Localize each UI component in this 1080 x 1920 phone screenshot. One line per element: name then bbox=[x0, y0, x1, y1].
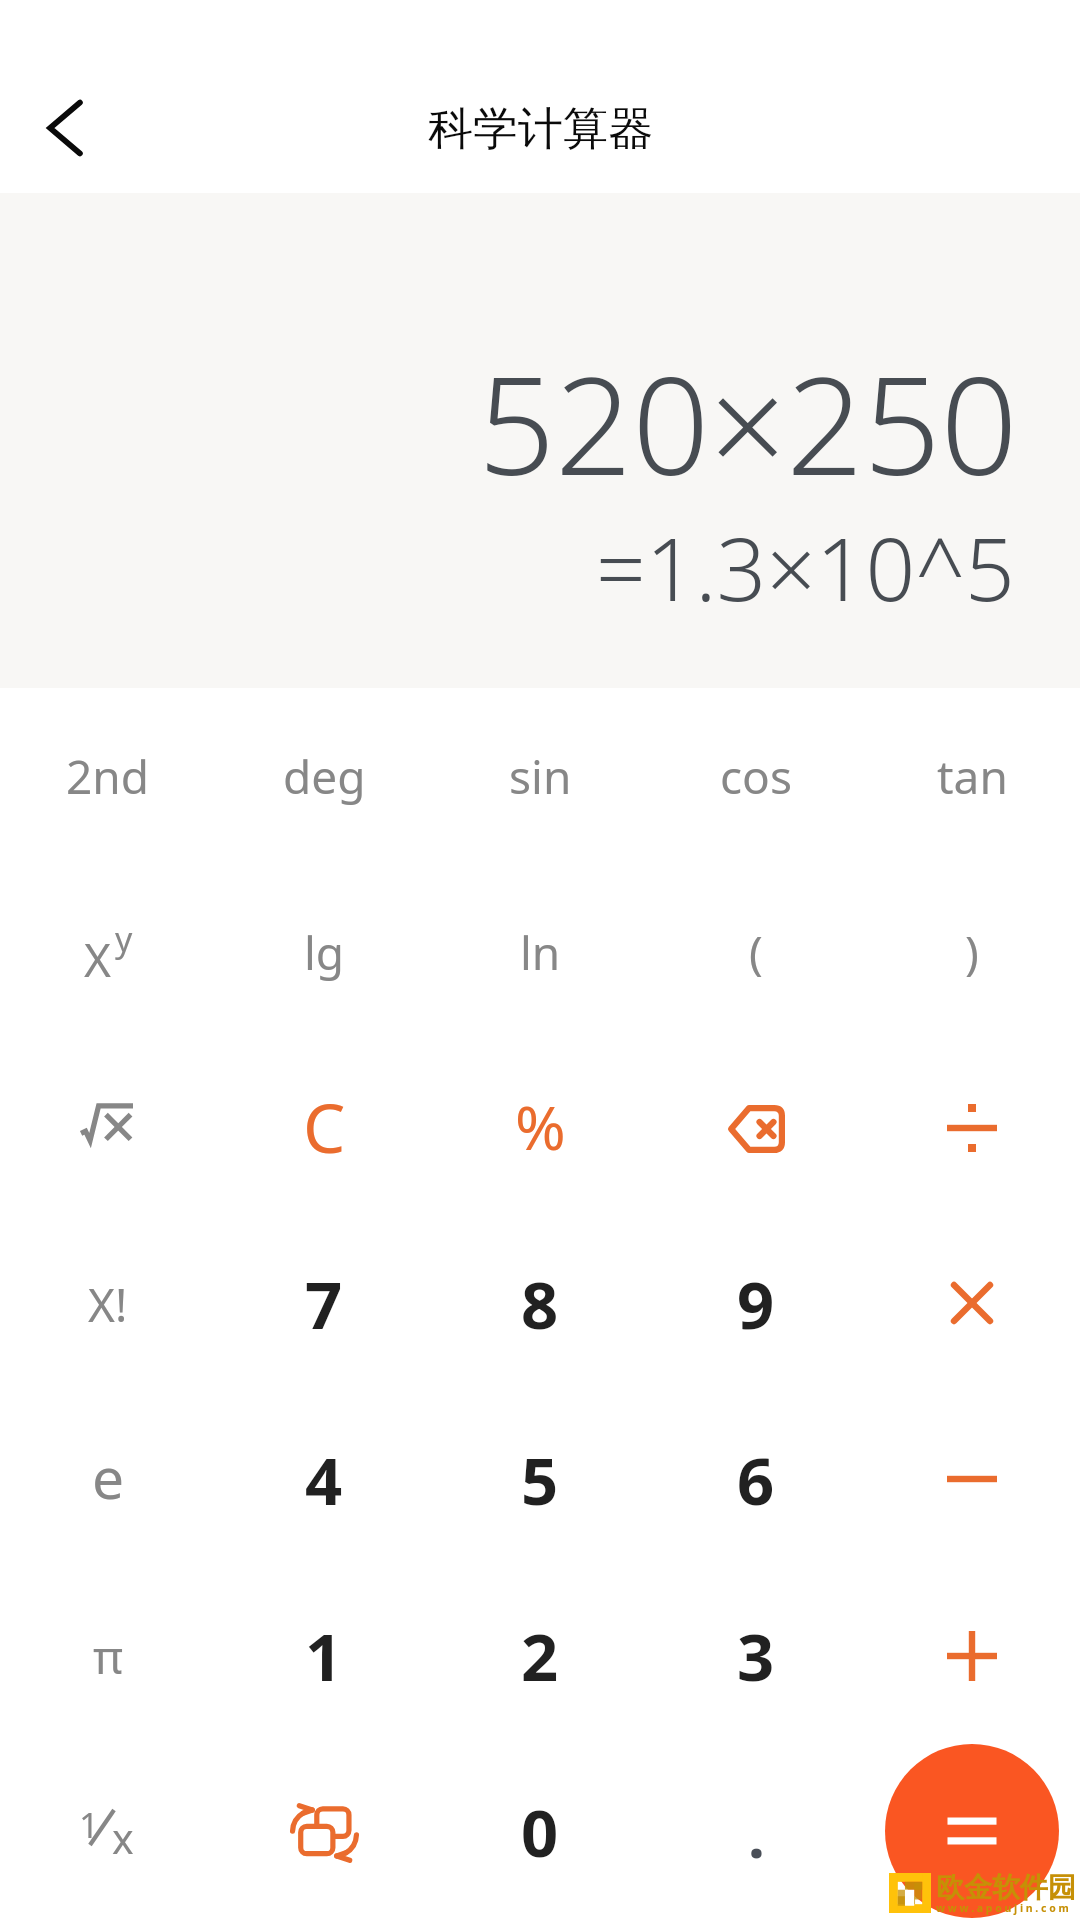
staticText: 7 bbox=[305, 1260, 343, 1349]
staticText: sin bbox=[509, 745, 572, 808]
button[interactable]: Convert bbox=[216, 1744, 432, 1920]
staticText: 5 bbox=[521, 1436, 559, 1525]
staticText: . bbox=[748, 1794, 765, 1876]
button[interactable]: Divide bbox=[864, 1040, 1080, 1216]
button[interactable]: 4 bbox=[216, 1392, 432, 1568]
staticText: 4 bbox=[305, 1436, 343, 1525]
button[interactable]: ( bbox=[648, 864, 864, 1040]
staticText: y bbox=[115, 916, 133, 962]
button[interactable]: 0 bbox=[432, 1744, 648, 1920]
button[interactable]: 1 bbox=[0, 1744, 216, 1920]
staticText: deg bbox=[283, 745, 366, 808]
button[interactable]: 5 bbox=[432, 1392, 648, 1568]
button[interactable]: ln bbox=[432, 864, 648, 1040]
button[interactable]: deg bbox=[216, 688, 432, 864]
staticText: 2nd bbox=[66, 745, 150, 808]
staticText: w w w . a p o u j i n . c o m bbox=[936, 1901, 1069, 1915]
staticText: π bbox=[93, 1625, 124, 1688]
staticText: 1 bbox=[79, 1801, 100, 1845]
button[interactable]: . bbox=[648, 1744, 864, 1920]
button[interactable]: 3 bbox=[648, 1568, 864, 1744]
staticText: ) bbox=[965, 921, 979, 984]
staticText: % bbox=[515, 1085, 566, 1168]
staticText: =1.3×10^5 bbox=[596, 508, 1015, 626]
button[interactable]: tan bbox=[864, 688, 1080, 864]
button[interactable]: 7 bbox=[216, 1216, 432, 1392]
staticText: x bbox=[112, 1810, 134, 1854]
button[interactable]: π bbox=[0, 1568, 216, 1744]
button[interactable]: sin bbox=[432, 688, 648, 864]
button[interactable]: Delete bbox=[648, 1040, 864, 1216]
staticText: C bbox=[303, 1081, 346, 1172]
staticText: X! bbox=[88, 1273, 128, 1336]
button[interactable]: C bbox=[216, 1040, 432, 1216]
button[interactable]: X bbox=[0, 864, 216, 1040]
staticText: tan bbox=[937, 745, 1008, 808]
staticText: 1 bbox=[305, 1612, 343, 1701]
button[interactable]: 2 bbox=[432, 1568, 648, 1744]
button[interactable]: 6 bbox=[648, 1392, 864, 1568]
staticText: ( bbox=[749, 921, 763, 984]
button[interactable]: Multiply bbox=[864, 1216, 1080, 1392]
staticText: 8 bbox=[521, 1260, 559, 1349]
staticText: ln bbox=[520, 921, 561, 984]
staticText: 2 bbox=[521, 1612, 559, 1701]
staticText: 9 bbox=[737, 1260, 775, 1349]
button[interactable]: 9 bbox=[648, 1216, 864, 1392]
staticText: 科学计算器 bbox=[428, 101, 653, 158]
staticText: 6 bbox=[737, 1436, 775, 1525]
staticText: lg bbox=[304, 921, 345, 984]
staticText: cos bbox=[720, 745, 792, 808]
button[interactable]: lg bbox=[216, 864, 432, 1040]
button[interactable]: ) bbox=[864, 864, 1080, 1040]
staticText: 0 bbox=[521, 1788, 559, 1877]
button[interactable]: 1 bbox=[216, 1568, 432, 1744]
button[interactable]: e bbox=[0, 1392, 216, 1568]
button[interactable]: Plus bbox=[864, 1568, 1080, 1744]
staticText: e bbox=[92, 1438, 125, 1516]
staticText: 520×250 bbox=[478, 331, 1018, 515]
button[interactable]: cos bbox=[648, 688, 864, 864]
staticText: 3 bbox=[737, 1612, 775, 1701]
button[interactable]: Square root bbox=[0, 1040, 216, 1216]
staticText: 欧金软件园 bbox=[936, 1870, 1076, 1905]
button[interactable]: 8 bbox=[432, 1216, 648, 1392]
button[interactable]: Equals bbox=[885, 1744, 1059, 1918]
button[interactable]: Back bbox=[17, 80, 113, 176]
button[interactable]: % bbox=[432, 1040, 648, 1216]
button[interactable]: X! bbox=[0, 1216, 216, 1392]
staticText: X bbox=[84, 928, 111, 988]
button[interactable]: 2nd bbox=[0, 688, 216, 864]
button[interactable]: Minus bbox=[864, 1392, 1080, 1568]
